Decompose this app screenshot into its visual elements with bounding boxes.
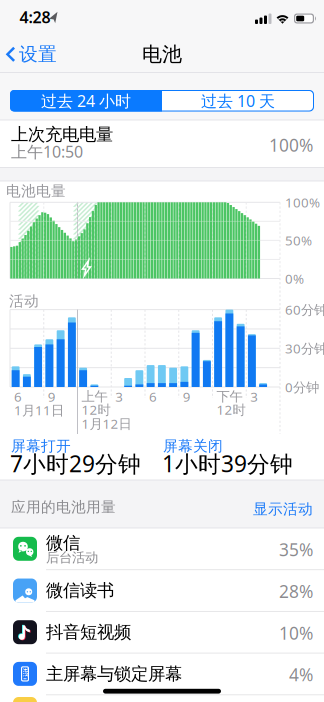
button[interactable]: 主屏幕与锁定屏幕 <box>0 653 324 695</box>
staticText: 微信读书 <box>46 580 114 601</box>
staticText: 1月11日 <box>14 401 64 419</box>
staticText: 主屏幕与锁定屏幕 <box>46 663 182 685</box>
button[interactable]: 微信 <box>0 528 324 570</box>
staticText: 活动 <box>9 292 39 310</box>
button[interactable]: 过去 24 小时 <box>10 90 162 111</box>
staticText: 上午 <box>81 388 107 405</box>
staticText: 3 <box>250 388 258 405</box>
button[interactable]: 微信读书 <box>0 570 324 611</box>
button[interactable]: 设置 <box>0 36 80 72</box>
staticText: 12时 <box>216 401 245 418</box>
staticText: 上次充电电量 <box>11 124 113 145</box>
staticText: 微信 <box>46 532 80 554</box>
staticText: 电池 <box>142 42 182 67</box>
staticText: 3 <box>115 388 123 405</box>
staticText: 屏幕关闭 <box>163 437 223 455</box>
staticText: 下午 <box>216 388 242 405</box>
staticText: 6 <box>149 388 157 405</box>
staticText: 1小时39分钟 <box>162 448 293 478</box>
staticText: 12时 <box>81 401 110 418</box>
staticText: 100% <box>285 193 320 211</box>
staticText: 1月12日 <box>81 415 131 432</box>
staticText: 10% <box>279 621 313 644</box>
staticText: 9 <box>183 388 191 405</box>
staticText: 0分钟 <box>285 378 319 396</box>
staticText: 60分钟 <box>285 301 324 318</box>
staticText: 应用的电池用量 <box>11 498 116 516</box>
staticText: 6 <box>14 388 22 405</box>
staticText: 过去 10 天 <box>201 90 275 111</box>
staticText: 4:28 <box>19 6 50 28</box>
button[interactable]: 过去 10 天 <box>162 90 314 111</box>
staticText: 0% <box>285 270 304 287</box>
staticText: 28% <box>279 580 313 603</box>
staticText: 屏幕打开 <box>11 437 71 455</box>
staticText: 电池电量 <box>6 182 66 200</box>
staticText: 30分钟 <box>285 339 324 357</box>
staticText: 4% <box>289 663 313 686</box>
button[interactable]: 抖音短视频 <box>0 611 324 653</box>
staticText: 9 <box>48 388 56 405</box>
staticText: 设置 <box>19 43 57 66</box>
staticText: 过去 24 小时 <box>41 90 131 111</box>
staticText: 7小时29分钟 <box>10 448 141 478</box>
staticText: 抖音短视频 <box>46 622 131 643</box>
staticText: 后台活动 <box>46 549 98 566</box>
staticText: 显示活动 <box>253 500 313 518</box>
staticText: 上午10:50 <box>11 141 83 162</box>
staticText: 35% <box>279 538 313 561</box>
button[interactable]: 显示活动 <box>223 495 313 523</box>
staticText: 100% <box>269 133 313 156</box>
staticText: 50% <box>285 231 312 249</box>
